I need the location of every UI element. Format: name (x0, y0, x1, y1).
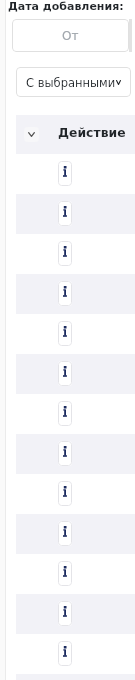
button[interactable]: Info (58, 521, 72, 546)
button[interactable]: Info (16, 194, 135, 234)
button[interactable]: Info (58, 601, 72, 626)
button[interactable]: Info (58, 321, 72, 346)
button[interactable]: Info (16, 554, 135, 594)
button[interactable]: От (12, 19, 129, 52)
button[interactable]: Info (16, 154, 135, 194)
button[interactable]: Info (58, 361, 72, 386)
button[interactable]: Info (16, 354, 135, 394)
button[interactable]: Info (58, 201, 72, 226)
button[interactable]: Info (58, 441, 72, 466)
button[interactable]: Info (16, 594, 135, 634)
button[interactable]: Info (16, 434, 135, 474)
staticText: Действие (58, 125, 126, 139)
button[interactable]: Info (58, 161, 72, 186)
button[interactable]: Info (58, 281, 72, 306)
button[interactable]: Info (16, 314, 135, 354)
button[interactable]: Collapse column (24, 127, 39, 142)
staticText: С выбранными (26, 76, 116, 89)
button[interactable]: Info (58, 481, 72, 506)
button[interactable]: Info (16, 474, 135, 514)
button[interactable]: Info (16, 394, 135, 434)
staticText: От (62, 29, 79, 43)
button[interactable]: Info (58, 401, 72, 426)
button[interactable]: Info (16, 274, 135, 314)
button[interactable]: Info (58, 561, 72, 586)
button[interactable]: Info (16, 634, 135, 674)
staticText: Дата добавления: (8, 0, 124, 13)
button[interactable]: Info (58, 641, 72, 666)
button[interactable]: Info (58, 241, 72, 266)
button[interactable]: Info (16, 234, 135, 274)
button[interactable]: С выбранными (16, 67, 131, 97)
button[interactable]: Info (16, 514, 135, 554)
